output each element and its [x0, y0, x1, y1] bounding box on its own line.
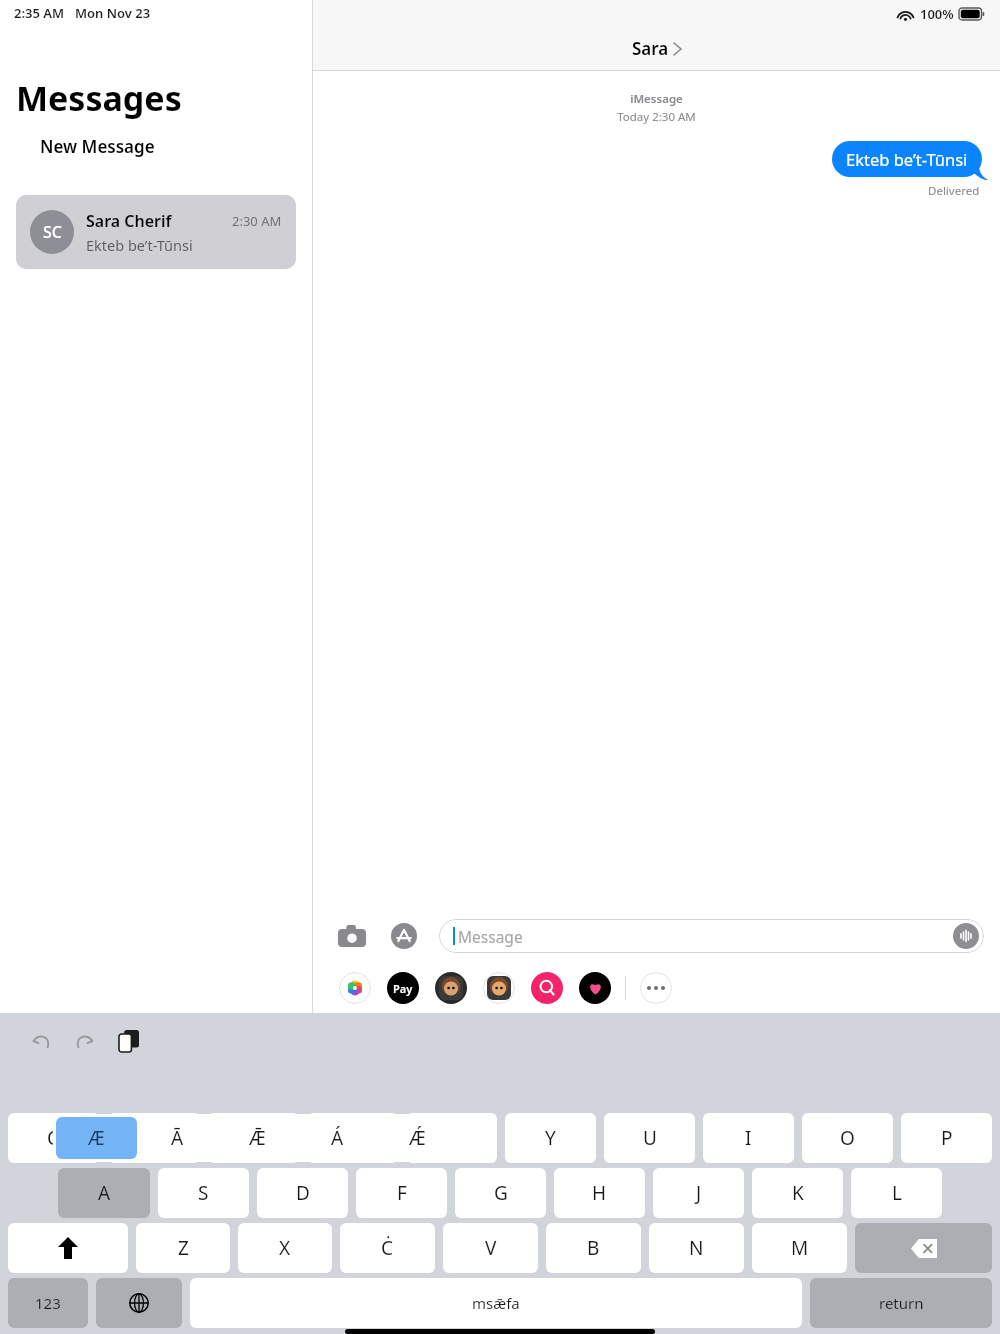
button[interactable]: M	[752, 1223, 847, 1273]
staticText: Z	[178, 1235, 189, 1261]
button[interactable]: Switch keyboard	[96, 1278, 182, 1328]
staticText: D	[296, 1180, 310, 1206]
staticText: msǣfa	[472, 1293, 520, 1313]
button[interactable]: Á	[297, 1117, 377, 1159]
button[interactable]: Z	[136, 1223, 230, 1273]
button[interactable]: Ā	[137, 1117, 217, 1159]
staticText: G	[494, 1180, 508, 1206]
staticText: F	[397, 1180, 407, 1206]
staticText: 2:30 AM	[232, 212, 282, 230]
button[interactable]: Æ	[56, 1117, 137, 1159]
staticText: Q	[47, 1125, 62, 1151]
staticText: A	[98, 1180, 111, 1206]
button[interactable]: Ċ	[340, 1223, 435, 1273]
button[interactable]: App Store	[387, 919, 421, 953]
staticText: Message	[458, 926, 523, 947]
button[interactable]: SC	[16, 195, 296, 269]
button[interactable]: Shift	[8, 1223, 128, 1273]
staticText: Ǽ	[409, 1125, 426, 1151]
staticText: U	[643, 1125, 657, 1151]
staticText: Delivered	[928, 183, 980, 199]
button[interactable]: S	[158, 1168, 249, 1218]
button[interactable]: App	[483, 972, 515, 1004]
button[interactable]: P	[901, 1113, 992, 1163]
button[interactable]: X	[238, 1223, 332, 1273]
staticText: return	[879, 1293, 924, 1313]
button[interactable]: K	[752, 1168, 843, 1218]
staticText: Y	[545, 1125, 556, 1151]
button[interactable]: W	[108, 1113, 200, 1163]
staticText: K	[792, 1180, 804, 1206]
staticText: SC	[43, 221, 62, 243]
button[interactable]: Redo	[68, 1024, 102, 1058]
button[interactable]: D	[257, 1168, 348, 1218]
button[interactable]: App	[339, 972, 371, 1004]
button[interactable]: App	[579, 972, 611, 1004]
button[interactable]: Backspace	[855, 1223, 992, 1273]
staticText: Æ	[88, 1125, 105, 1151]
button[interactable]: Message	[439, 919, 984, 953]
staticText: Ǣ	[249, 1125, 266, 1151]
staticText: S	[198, 1180, 209, 1206]
button[interactable]: App	[531, 972, 563, 1004]
button[interactable]: L	[851, 1168, 942, 1218]
button[interactable]: App	[640, 972, 672, 1004]
button[interactable]: Ǽ	[377, 1117, 457, 1159]
button[interactable]: Camera	[335, 919, 369, 953]
button[interactable]: A	[58, 1168, 150, 1218]
staticText: iMessage	[313, 91, 1000, 107]
staticText: O	[840, 1125, 855, 1151]
button[interactable]: B	[546, 1223, 641, 1273]
button[interactable]: U	[604, 1113, 695, 1163]
button[interactable]: App	[435, 972, 467, 1004]
button[interactable]: Ǣ	[217, 1117, 297, 1159]
staticText: Pay	[393, 981, 413, 996]
button[interactable]: J	[653, 1168, 744, 1218]
button[interactable]: Paste	[112, 1024, 146, 1058]
button[interactable]: return	[810, 1278, 992, 1328]
other: Audio message	[953, 923, 979, 949]
staticText: Ekteb be’t-Tūnsi	[846, 148, 968, 170]
staticText: B	[587, 1235, 600, 1261]
staticText: Sara Cherif	[86, 210, 172, 232]
staticText: Mon Nov 23	[75, 4, 151, 22]
button[interactable]: msǣfa	[190, 1278, 802, 1328]
staticText: M	[791, 1235, 809, 1261]
button[interactable]: V	[443, 1223, 538, 1273]
staticText: N	[689, 1235, 704, 1261]
staticText: E	[248, 1125, 259, 1151]
button[interactable]: Q	[8, 1113, 100, 1163]
staticText: Ekteb be’t-Tūnsi	[86, 235, 193, 255]
button[interactable]: T	[406, 1113, 497, 1163]
staticText: Today 2:30 AM	[313, 109, 1000, 125]
button[interactable]: G	[455, 1168, 546, 1218]
staticText: Ċ	[381, 1235, 394, 1261]
staticText: Ā	[171, 1125, 184, 1151]
button[interactable]: F	[356, 1168, 447, 1218]
staticText: X	[279, 1235, 291, 1261]
button[interactable]: Sara	[632, 37, 681, 60]
staticText: H	[592, 1180, 607, 1206]
button[interactable]: R	[307, 1113, 398, 1163]
button[interactable]: App	[387, 972, 419, 1004]
staticText: L	[892, 1180, 902, 1206]
staticText: I	[745, 1125, 752, 1151]
button[interactable]: O	[802, 1113, 893, 1163]
button[interactable]: 123	[8, 1278, 88, 1328]
button[interactable]: I	[703, 1113, 794, 1163]
button[interactable]: Y	[505, 1113, 596, 1163]
staticText: 100%	[920, 5, 954, 23]
staticText: Sara	[632, 37, 669, 60]
button[interactable]: Undo	[24, 1024, 58, 1058]
button[interactable]: N	[649, 1223, 744, 1273]
button[interactable]: H	[554, 1168, 645, 1218]
button[interactable]: Ekteb be’t-Tūnsi	[832, 141, 982, 177]
button[interactable]: E	[208, 1113, 299, 1163]
staticText: V	[485, 1235, 497, 1261]
button[interactable]: New Message	[40, 135, 155, 158]
staticText: Á	[331, 1125, 344, 1151]
staticText: Messages	[16, 75, 182, 121]
